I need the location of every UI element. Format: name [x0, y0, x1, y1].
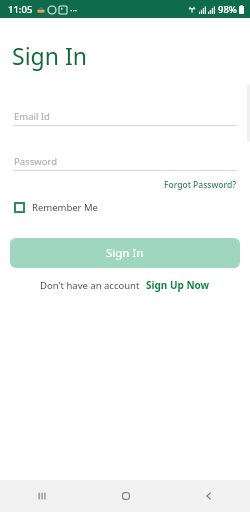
button[interactable]: Sign Up Now [145, 276, 211, 294]
button[interactable]: Password [13, 153, 237, 169]
staticText: Remember Me [32, 201, 98, 214]
staticText: Sign In [106, 245, 144, 261]
button[interactable]: Sign In [10, 238, 240, 268]
staticText: 11:05 [8, 3, 33, 16]
staticText: Password [14, 155, 57, 168]
staticText: Don't have an account [40, 279, 140, 292]
staticText: ··· [70, 4, 78, 16]
button[interactable]: Remember Me [12, 198, 100, 217]
staticText: Sign Up Now [146, 278, 210, 292]
button[interactable]: Forgot Password? [162, 177, 238, 193]
staticText: Email Id [14, 110, 50, 123]
staticText: 98% [218, 3, 237, 16]
button[interactable]: Recent apps [0, 480, 84, 512]
button[interactable]: Back [167, 480, 250, 512]
staticText: Sign In [12, 40, 87, 71]
button[interactable]: Home [84, 480, 167, 512]
button[interactable]: Email Id [13, 108, 237, 124]
staticText: Forgot Password? [164, 179, 236, 191]
